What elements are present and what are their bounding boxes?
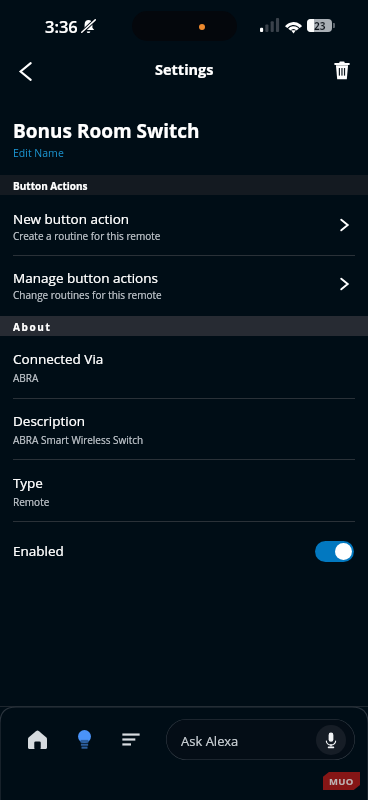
button[interactable]: Ask Alexa [166, 719, 355, 760]
button[interactable]: Delete [317, 47, 367, 93]
button[interactable]: Edit Name [13, 146, 64, 160]
button[interactable]: More [111, 719, 151, 759]
staticText: About [13, 320, 52, 334]
staticText: Enabled [13, 542, 315, 560]
staticText: Edit Name [13, 146, 64, 160]
staticText: Ask Alexa [181, 732, 239, 750]
button[interactable]: Devices [64, 720, 104, 760]
staticText: Change routines for this remote [13, 288, 162, 302]
staticText: Create a routine for this remote [13, 229, 161, 243]
button[interactable]: New button action [0, 205, 368, 247]
staticText: New button action [13, 210, 130, 228]
staticText: Bonus Room Switch [13, 118, 200, 144]
staticText: ABRA [13, 371, 39, 385]
staticText: MUO [329, 775, 354, 788]
staticText: Button Actions [13, 179, 88, 193]
staticText: Connected Via [13, 350, 104, 368]
button[interactable]: Manage button actions [0, 264, 368, 306]
button[interactable]: Back [0, 48, 50, 94]
button[interactable]: Enabled [0, 537, 368, 565]
staticText: Remote [13, 495, 50, 509]
staticText: Description [13, 412, 86, 430]
staticText: ABRA Smart Wireless Switch [13, 433, 144, 447]
staticText: Settings [155, 60, 214, 80]
staticText: Manage button actions [13, 269, 158, 287]
staticText: 23 [314, 19, 326, 32]
staticText: Type [13, 474, 43, 492]
button[interactable]: Home [17, 719, 57, 759]
staticText: 3:36 [45, 15, 78, 37]
